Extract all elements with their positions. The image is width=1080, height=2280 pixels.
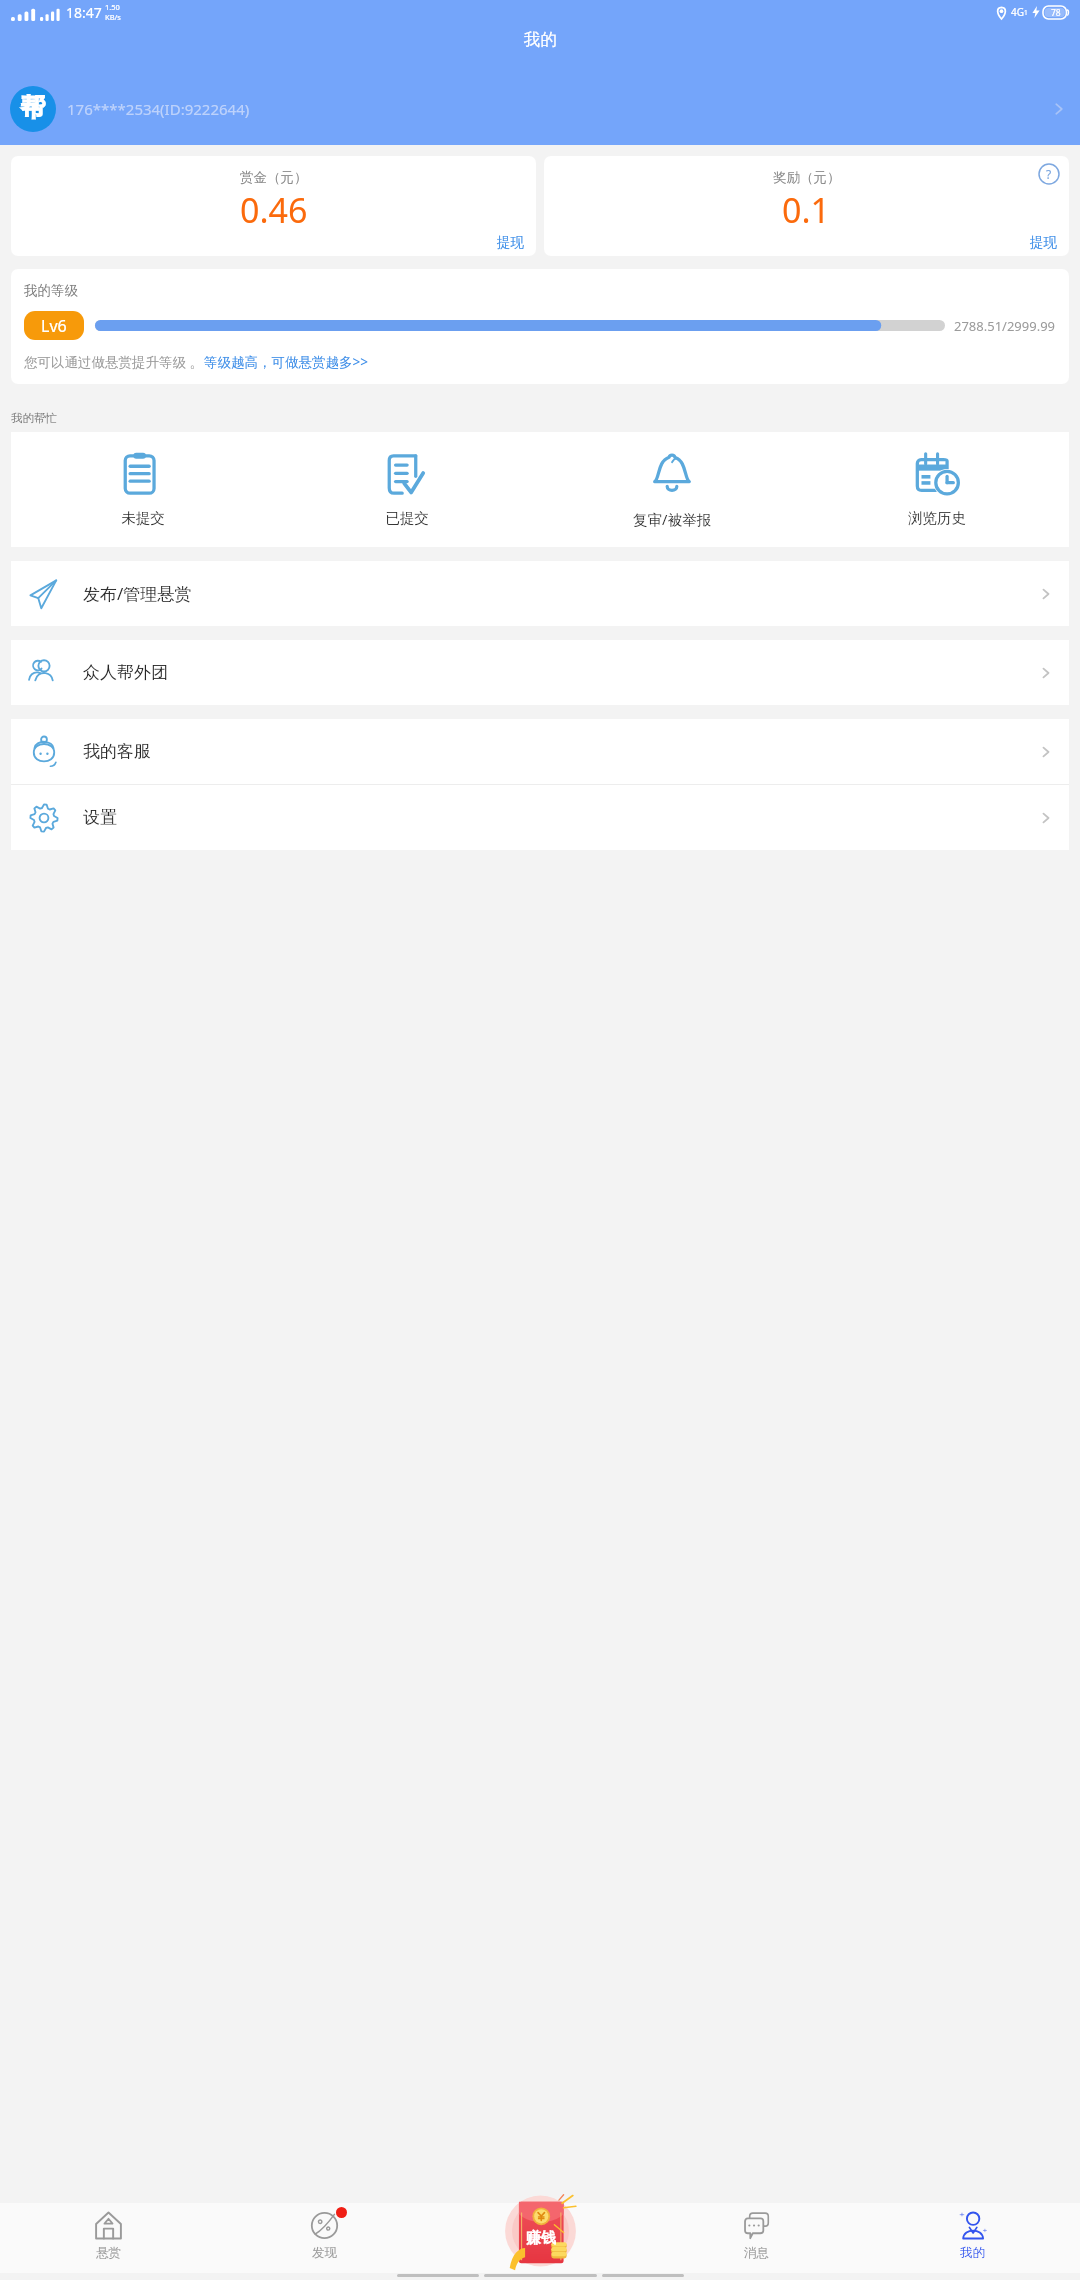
button[interactable]: 未提交 xyxy=(11,448,275,529)
button[interactable]: 我的等级 xyxy=(11,269,1069,384)
staticText: 赚钱 xyxy=(526,2229,556,2248)
button[interactable]: 发布/管理悬赏 xyxy=(11,561,1069,626)
staticText: 帮 xyxy=(10,92,56,132)
staticText: 已提交 xyxy=(385,509,429,527)
staticText: 我的帮忙 xyxy=(11,411,57,425)
staticText: ? xyxy=(1046,166,1052,182)
button[interactable]: 帮 xyxy=(0,86,1080,132)
staticText: 赏金（元） xyxy=(240,169,308,186)
button[interactable]: 悬赏 xyxy=(0,2203,216,2273)
staticText: 悬赏 xyxy=(96,2245,121,2261)
staticText: 1 xyxy=(1024,8,1028,17)
button[interactable]: 提现 xyxy=(497,234,524,251)
staticText: 我的 xyxy=(524,29,557,50)
staticText: KB/s xyxy=(105,12,121,22)
button[interactable]: 等级越高，可做悬赏越多>> xyxy=(204,353,368,371)
staticText: 0.46 xyxy=(240,187,308,233)
button[interactable]: 发现 xyxy=(216,2203,432,2273)
button[interactable]: 已提交 xyxy=(275,448,539,529)
staticText: 2788.51/2999.99 xyxy=(954,317,1056,335)
staticText: 176****2534(ID:9222644) xyxy=(67,99,250,119)
staticText: 0.1 xyxy=(782,187,831,233)
button[interactable]: 提现 xyxy=(1030,234,1057,251)
staticText: 我的 xyxy=(960,2245,985,2261)
staticText: 设置 xyxy=(83,807,117,828)
staticText: 浏览历史 xyxy=(908,509,966,527)
button[interactable]: 赏金（元） xyxy=(11,156,536,256)
staticText: 未提交 xyxy=(121,509,165,527)
staticText: 您可以通过做悬赏提升等级 。 xyxy=(24,353,204,371)
button[interactable]: 我的客服 xyxy=(11,719,1069,784)
staticText: 4G xyxy=(1011,5,1024,19)
staticText: 发现 xyxy=(312,2245,337,2261)
button[interactable]: 奖励（元） xyxy=(544,156,1069,256)
button[interactable]: 浏览历史 xyxy=(804,448,1069,529)
staticText: 消息 xyxy=(744,2245,769,2261)
button[interactable]: 众人帮外团 xyxy=(11,640,1069,705)
staticText: 18:47 xyxy=(66,3,102,22)
button[interactable]: 帮助 xyxy=(1038,163,1060,185)
staticText: 我的客服 xyxy=(83,741,151,762)
staticText: 1.50 xyxy=(105,2,120,12)
staticText: 发布/管理悬赏 xyxy=(83,582,192,605)
staticText: Lv6 xyxy=(41,315,67,337)
staticText: 奖励（元） xyxy=(773,169,841,186)
staticText: 78 xyxy=(1051,7,1061,19)
button[interactable]: 设置 xyxy=(11,785,1069,850)
staticText: 我的等级 xyxy=(24,282,78,299)
staticText: 复审/被举报 xyxy=(633,509,711,529)
button[interactable]: 我的 xyxy=(864,2203,1080,2273)
staticText: 众人帮外团 xyxy=(83,662,168,683)
button[interactable]: 复审/被举报 xyxy=(539,448,804,531)
button[interactable]: 消息 xyxy=(648,2203,864,2273)
button[interactable]: 赚钱 xyxy=(502,2194,579,2271)
